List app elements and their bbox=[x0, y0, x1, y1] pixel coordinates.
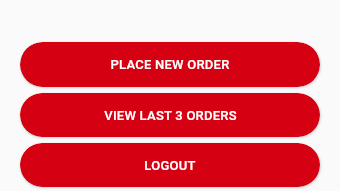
button[interactable]: PLACE NEW ORDER bbox=[20, 42, 320, 87]
staticText: PLACE NEW ORDER bbox=[110, 57, 230, 72]
staticText: VIEW LAST 3 ORDERS bbox=[104, 108, 237, 123]
button[interactable]: LOGOUT bbox=[20, 143, 320, 187]
button[interactable]: VIEW LAST 3 ORDERS bbox=[20, 93, 320, 137]
staticText: LOGOUT bbox=[144, 158, 196, 173]
